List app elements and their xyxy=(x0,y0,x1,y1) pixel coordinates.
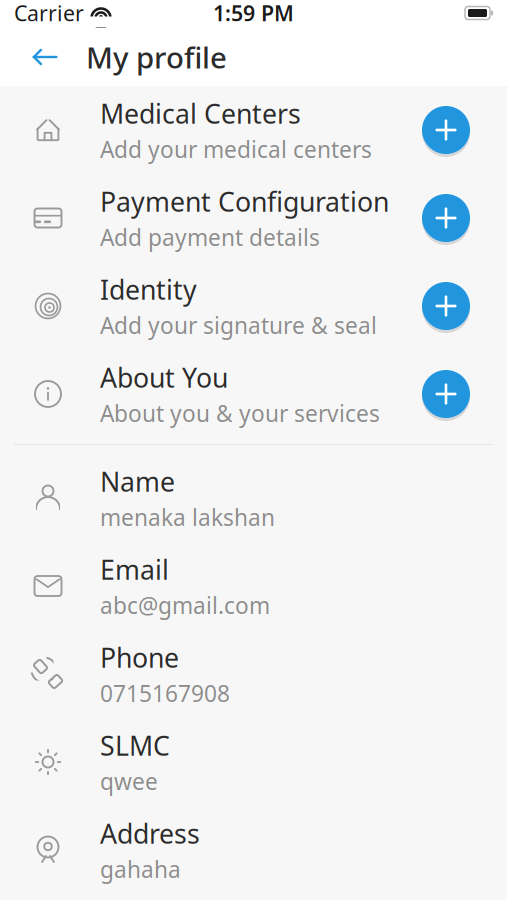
button[interactable]: Phone xyxy=(0,630,507,718)
staticText: My profile xyxy=(86,37,227,76)
button[interactable]: Name xyxy=(0,454,507,542)
staticText: Carrier xyxy=(14,0,84,27)
staticText: Email xyxy=(100,552,169,587)
staticText: Phone xyxy=(100,640,179,675)
staticText: Add your signature & seal xyxy=(100,310,377,340)
staticText: gahaha xyxy=(100,854,181,884)
button[interactable]: Payment Configuration xyxy=(0,174,507,262)
button[interactable]: Back xyxy=(21,33,69,81)
button[interactable]: SLMC xyxy=(0,718,507,806)
staticText: Add your medical centers xyxy=(100,134,372,164)
staticText: Identity xyxy=(100,272,197,307)
staticText: 1:59 PM xyxy=(213,0,294,27)
staticText: About You xyxy=(100,360,228,395)
button[interactable]: Medical Centers xyxy=(0,86,507,174)
staticText: Payment Configuration xyxy=(100,184,389,219)
button[interactable]: About You xyxy=(0,350,507,438)
staticText: Name xyxy=(100,464,175,499)
button[interactable]: Identity xyxy=(0,262,507,350)
staticText: qwee xyxy=(100,766,158,796)
button[interactable]: Email xyxy=(0,542,507,630)
staticText: Add payment details xyxy=(100,222,320,252)
staticText: abc@gmail.com xyxy=(100,590,270,620)
button[interactable]: Address xyxy=(0,806,507,894)
staticText: 0715167908 xyxy=(100,678,230,708)
staticText: Address xyxy=(100,816,200,851)
staticText: SLMC xyxy=(100,728,170,763)
staticText: Medical Centers xyxy=(100,96,301,131)
staticText: About you & your services xyxy=(100,398,380,428)
staticText: menaka lakshan xyxy=(100,502,275,532)
